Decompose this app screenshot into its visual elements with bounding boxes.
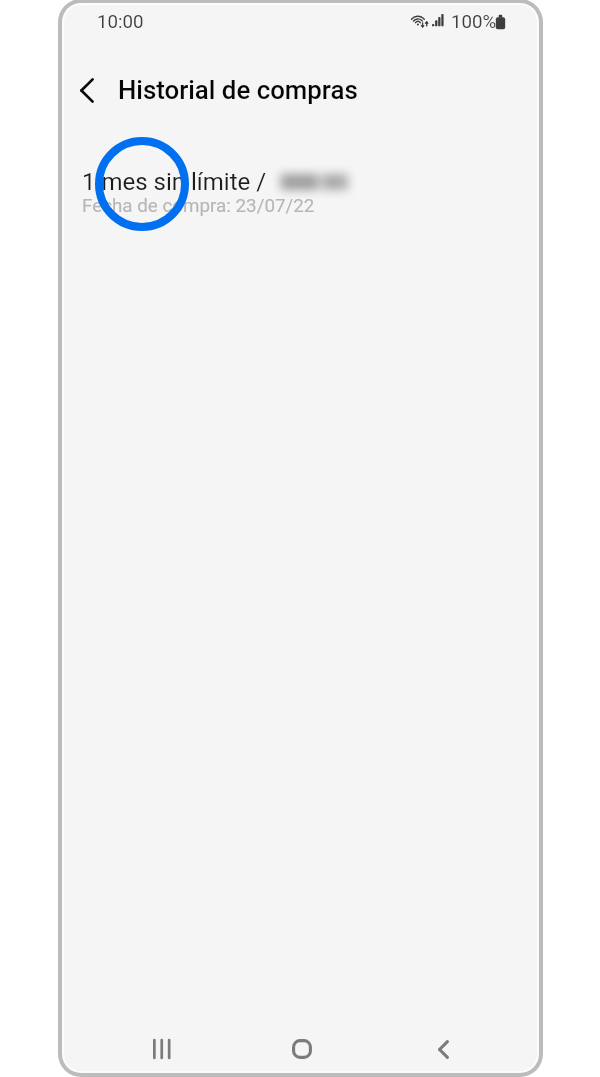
staticText: Fecha de compra: 23/07/22 — [82, 195, 315, 217]
staticText: 10:00 — [97, 11, 144, 33]
staticText: 1 mes sin límite / — [82, 168, 267, 196]
staticText: 100% — [451, 11, 497, 33]
button[interactable]: Recent apps — [134, 1029, 190, 1069]
button[interactable]: Back — [415, 1029, 471, 1069]
button[interactable]: Back — [64, 66, 111, 114]
button[interactable]: Home — [274, 1029, 330, 1069]
staticText: Historial de compras — [118, 75, 358, 105]
button[interactable]: 1 mes sin límite / — [64, 157, 537, 229]
